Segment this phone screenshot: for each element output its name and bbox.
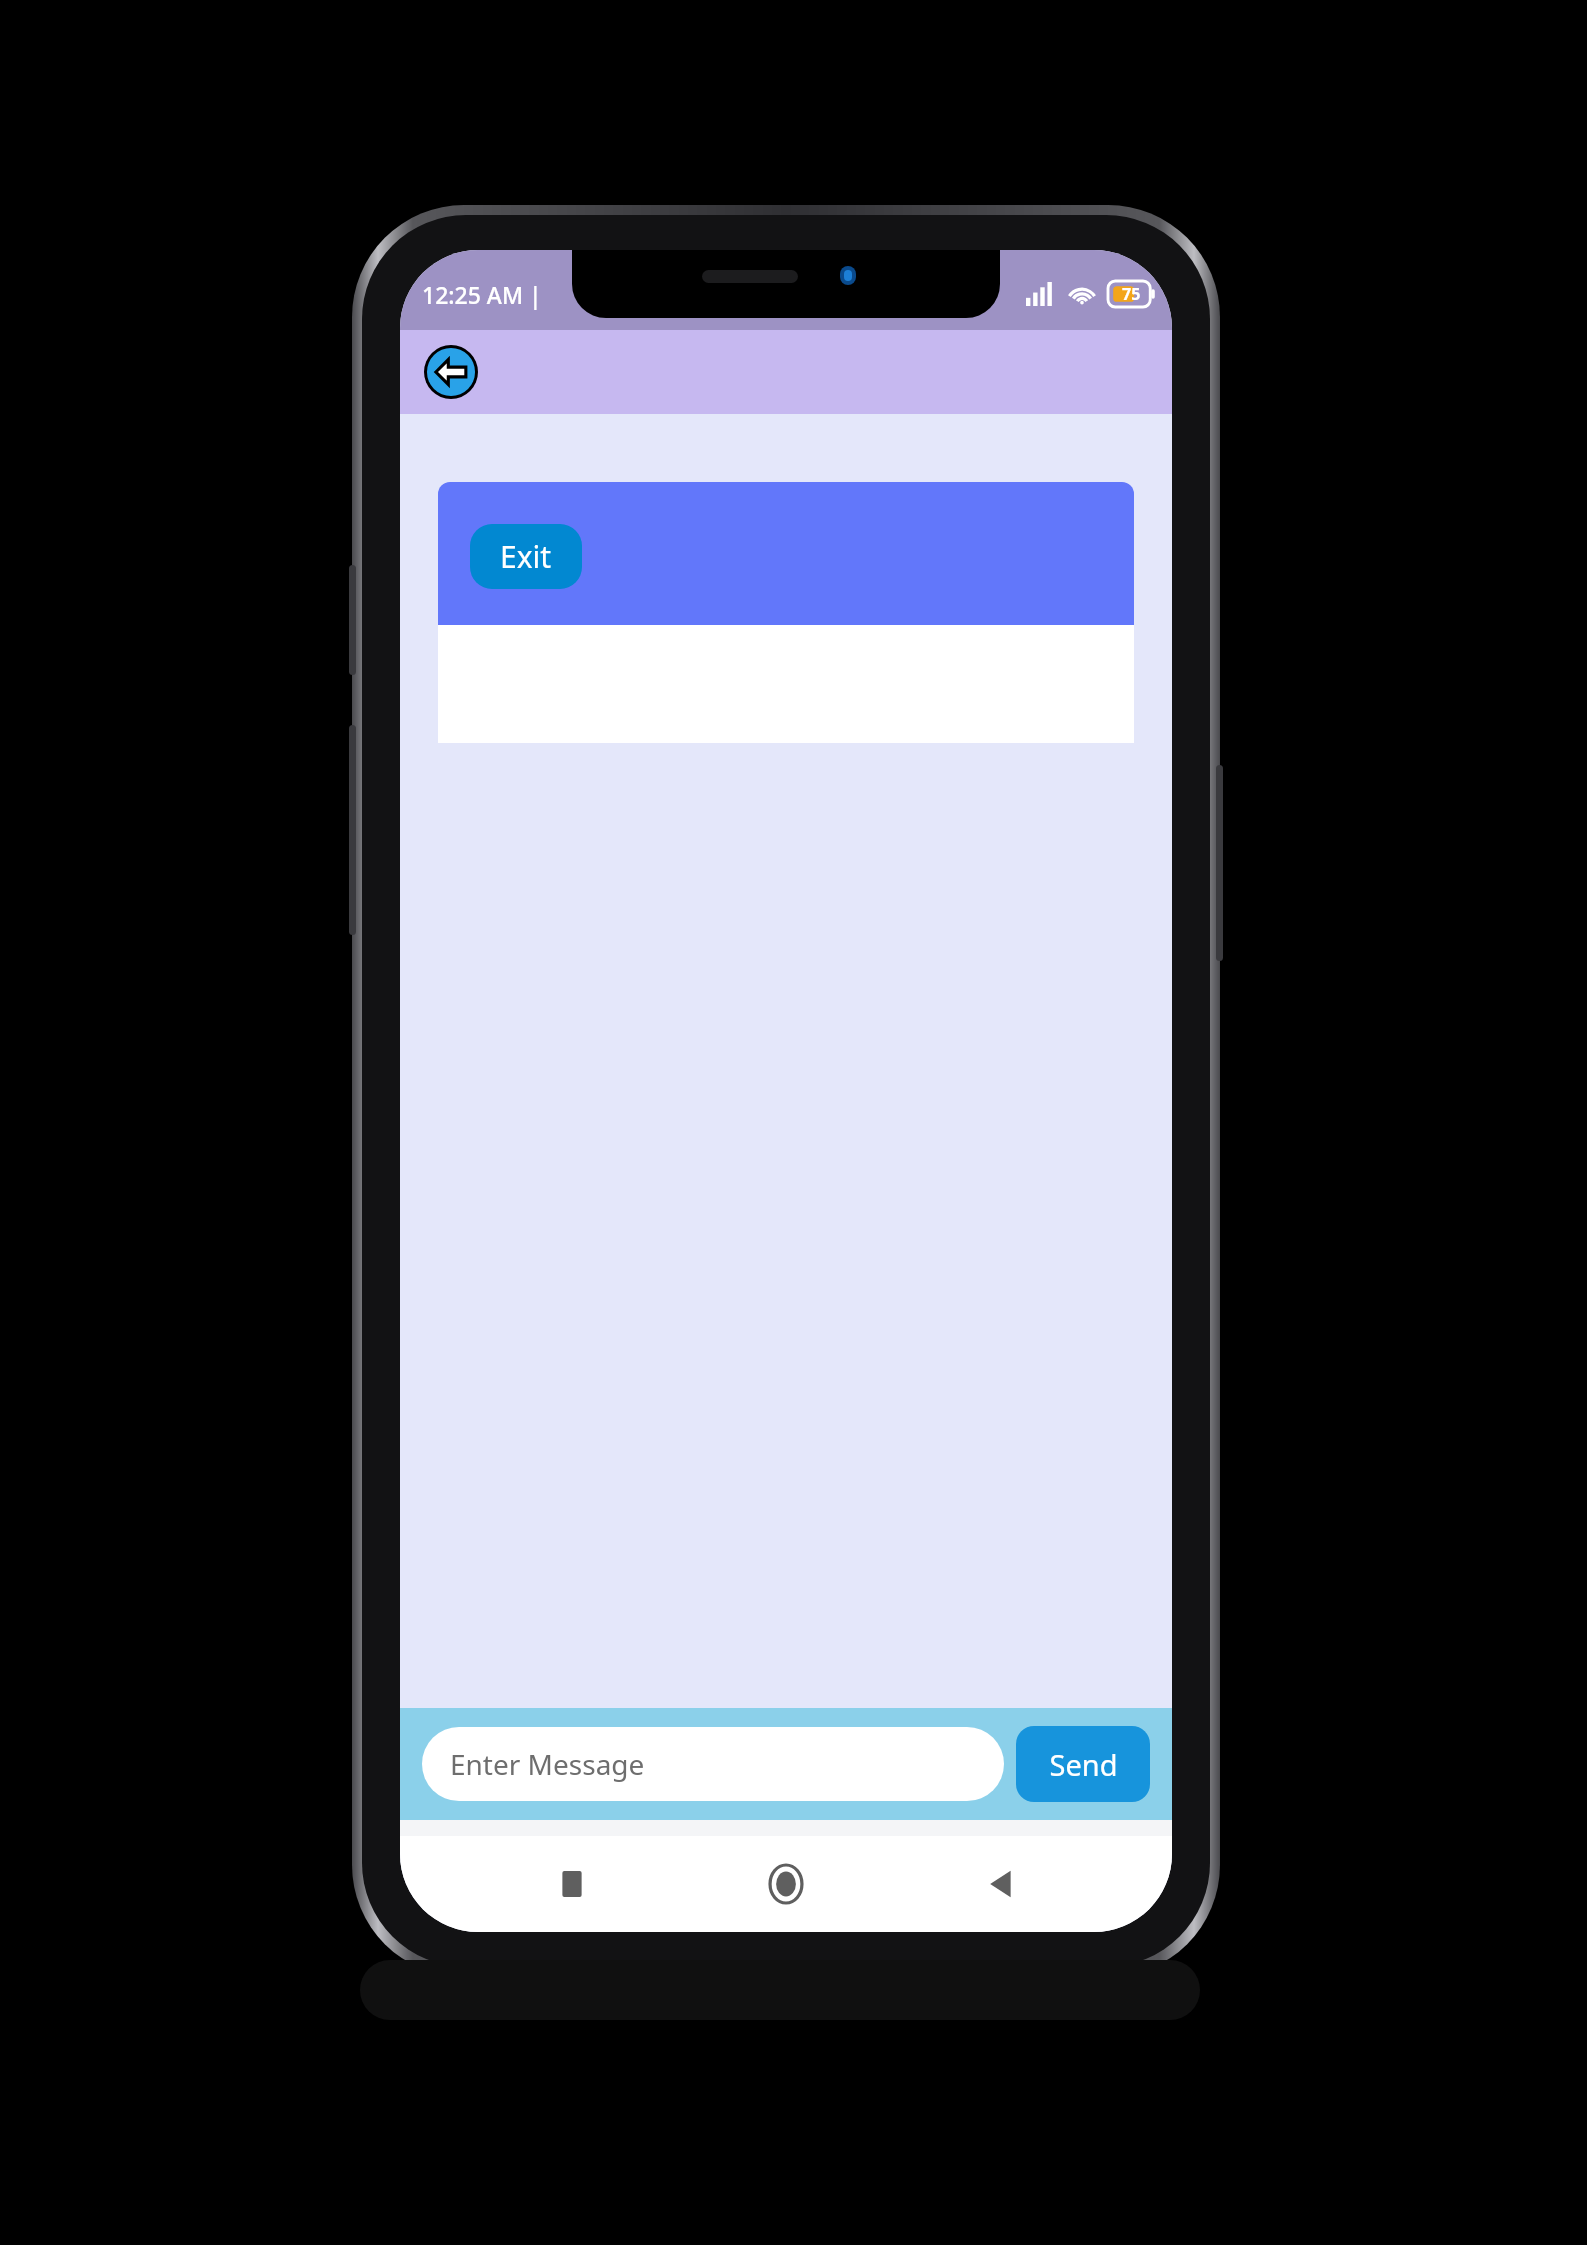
button[interactable]: Enter Message xyxy=(422,1727,1004,1801)
button[interactable]: Back xyxy=(958,1841,1044,1927)
staticText: Send xyxy=(1049,1745,1118,1784)
staticText: 12:25 AM | xyxy=(422,279,542,310)
button[interactable]: Home xyxy=(743,1841,829,1927)
button[interactable]: Recent apps xyxy=(529,1841,615,1927)
staticText: Enter Message xyxy=(450,1745,645,1783)
button[interactable]: Back xyxy=(422,343,480,401)
button[interactable]: Exit xyxy=(470,524,582,589)
staticText: Exit xyxy=(500,536,552,577)
button[interactable]: Send xyxy=(1016,1726,1150,1802)
staticText: 75 xyxy=(1122,283,1141,305)
